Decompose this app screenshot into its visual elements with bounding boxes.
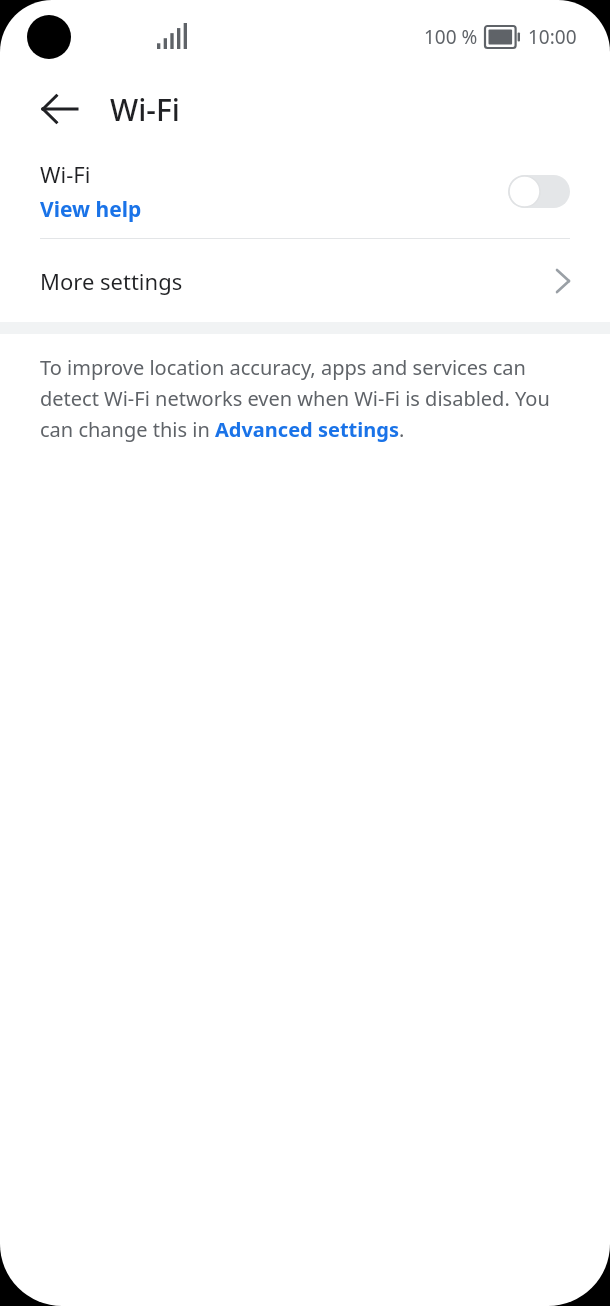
button[interactable]: More settings <box>0 239 610 322</box>
button[interactable]: View help <box>40 195 142 224</box>
staticText: Wi-Fi <box>110 89 180 130</box>
button[interactable]: Wi-Fi toggle <box>508 175 570 208</box>
staticText: To improve location accuracy, apps and s… <box>40 354 562 443</box>
button[interactable]: Back <box>30 79 90 139</box>
staticText: More settings <box>40 266 556 296</box>
staticText: 100 % <box>424 24 478 50</box>
staticText: 10:00 <box>528 24 577 50</box>
button[interactable]: Wi-Fi <box>0 144 610 238</box>
staticText: Wi-Fi <box>40 159 91 189</box>
